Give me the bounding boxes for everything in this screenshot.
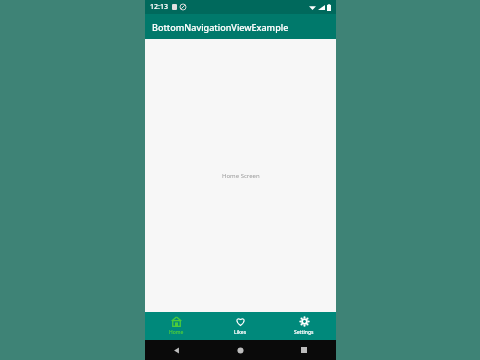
staticText: Likes [234,329,247,336]
other: Settings [299,316,310,327]
staticText: Home [169,329,184,336]
other: Likes [235,316,246,327]
staticText: 12:13 [150,2,168,12]
button[interactable]: Home [208,340,272,360]
button[interactable]: Likes [208,312,272,340]
staticText: Settings [294,329,314,336]
button[interactable]: Home [145,312,208,340]
staticText: Home Screen [222,172,260,180]
button[interactable]: Back [145,340,208,360]
staticText: BottomNavigationViewExample [152,21,289,33]
button[interactable]: Settings [272,312,336,340]
other: Home [171,316,182,327]
button[interactable]: Recents [272,340,336,360]
